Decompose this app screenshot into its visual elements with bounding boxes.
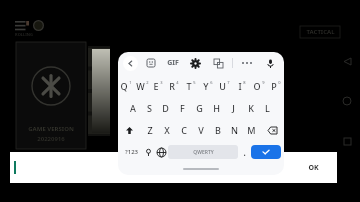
staticText: 20220916 [37,135,65,143]
button[interactable]: OK [10,152,337,183]
button[interactable]: Recents [336,130,358,152]
button[interactable]: ?123 [121,141,142,163]
staticText: G [196,102,203,114]
staticText: 9 [262,80,265,85]
staticText: . [243,147,246,158]
staticText: X [164,124,170,136]
staticText: F [180,102,185,114]
button[interactable]: S [141,97,157,119]
button[interactable]: Shift [118,119,141,141]
staticText: B [215,124,221,136]
staticText: 6 [210,80,213,85]
staticText: R [169,80,175,92]
staticText: D [162,102,169,114]
button[interactable]: Translate [209,54,227,72]
staticText: K [248,102,254,114]
staticText: 3 [160,80,163,85]
staticText: W [136,80,145,92]
button[interactable]: V [192,119,209,141]
staticText: A [130,102,136,114]
button[interactable]: N [226,119,243,141]
staticText: 2 [146,80,149,85]
button[interactable]: U [216,74,233,97]
staticText: I [238,80,242,92]
button[interactable]: Emoji [142,141,155,163]
staticText: U [219,80,226,92]
staticText: S [147,102,152,114]
button[interactable]: Change language [155,141,168,163]
staticText: P [271,80,277,92]
button[interactable]: C [175,119,192,141]
staticText: Q [120,80,128,92]
button[interactable]: X [158,119,175,141]
button[interactable]: H [208,97,225,119]
staticText: T [186,80,192,92]
button[interactable]: Voice input [261,54,279,72]
staticText: M [247,124,256,136]
button[interactable]: Stickers [142,54,160,72]
button[interactable]: Backspace [260,119,284,141]
button[interactable]: T [182,74,199,97]
staticText: GAME VERSION [28,125,74,133]
staticText: J [232,102,235,114]
button[interactable]: More options [238,54,256,72]
button[interactable]: OK [308,163,319,173]
button[interactable]: W [134,74,150,97]
button[interactable]: B [209,119,226,141]
button[interactable]: Home [336,90,358,112]
button[interactable]: J [225,97,242,119]
button[interactable]: P [267,74,284,97]
button[interactable]: E [150,74,166,97]
staticText: 7 [227,80,230,85]
staticText: 8 [243,80,246,85]
button[interactable]: O [250,74,267,97]
button[interactable]: GIF [164,54,182,72]
button[interactable]: Enter [251,145,281,159]
staticText: H [213,102,220,114]
staticText: L [265,102,270,114]
staticText: ?123 [125,148,138,156]
staticText: C [181,124,187,136]
staticText: O [253,80,261,92]
staticText: 0 [278,80,281,85]
button[interactable]: Z [141,119,158,141]
staticText: QWERTY [193,149,214,156]
staticText: ROLLING [15,32,33,37]
button[interactable]: QWERTY [168,145,238,159]
staticText: 4 [176,80,179,85]
button[interactable]: D [157,97,174,119]
staticText: 1 [129,80,132,85]
staticText: Y [203,80,209,92]
button[interactable]: I [233,74,250,97]
staticText: E [153,80,159,92]
button[interactable]: Settings [186,54,204,72]
staticText: V [198,124,204,136]
staticText: GIF [167,58,179,68]
staticText: OK [308,163,319,173]
button[interactable]: Back [336,50,358,72]
button[interactable]: Y [199,74,216,97]
button[interactable]: . [238,141,251,163]
button[interactable]: L [259,97,276,119]
button[interactable]: Q [118,74,134,97]
staticText: 5 [193,80,196,85]
button[interactable]: K [242,97,259,119]
button[interactable]: G [191,97,208,119]
button[interactable]: M [243,119,260,141]
staticText: TACTICAL [306,28,335,36]
button[interactable]: F [174,97,191,119]
button[interactable]: A [125,97,141,119]
staticText: Z [147,124,153,136]
staticText: N [231,124,238,136]
button[interactable]: R [166,74,182,97]
button[interactable]: Back [123,56,138,71]
